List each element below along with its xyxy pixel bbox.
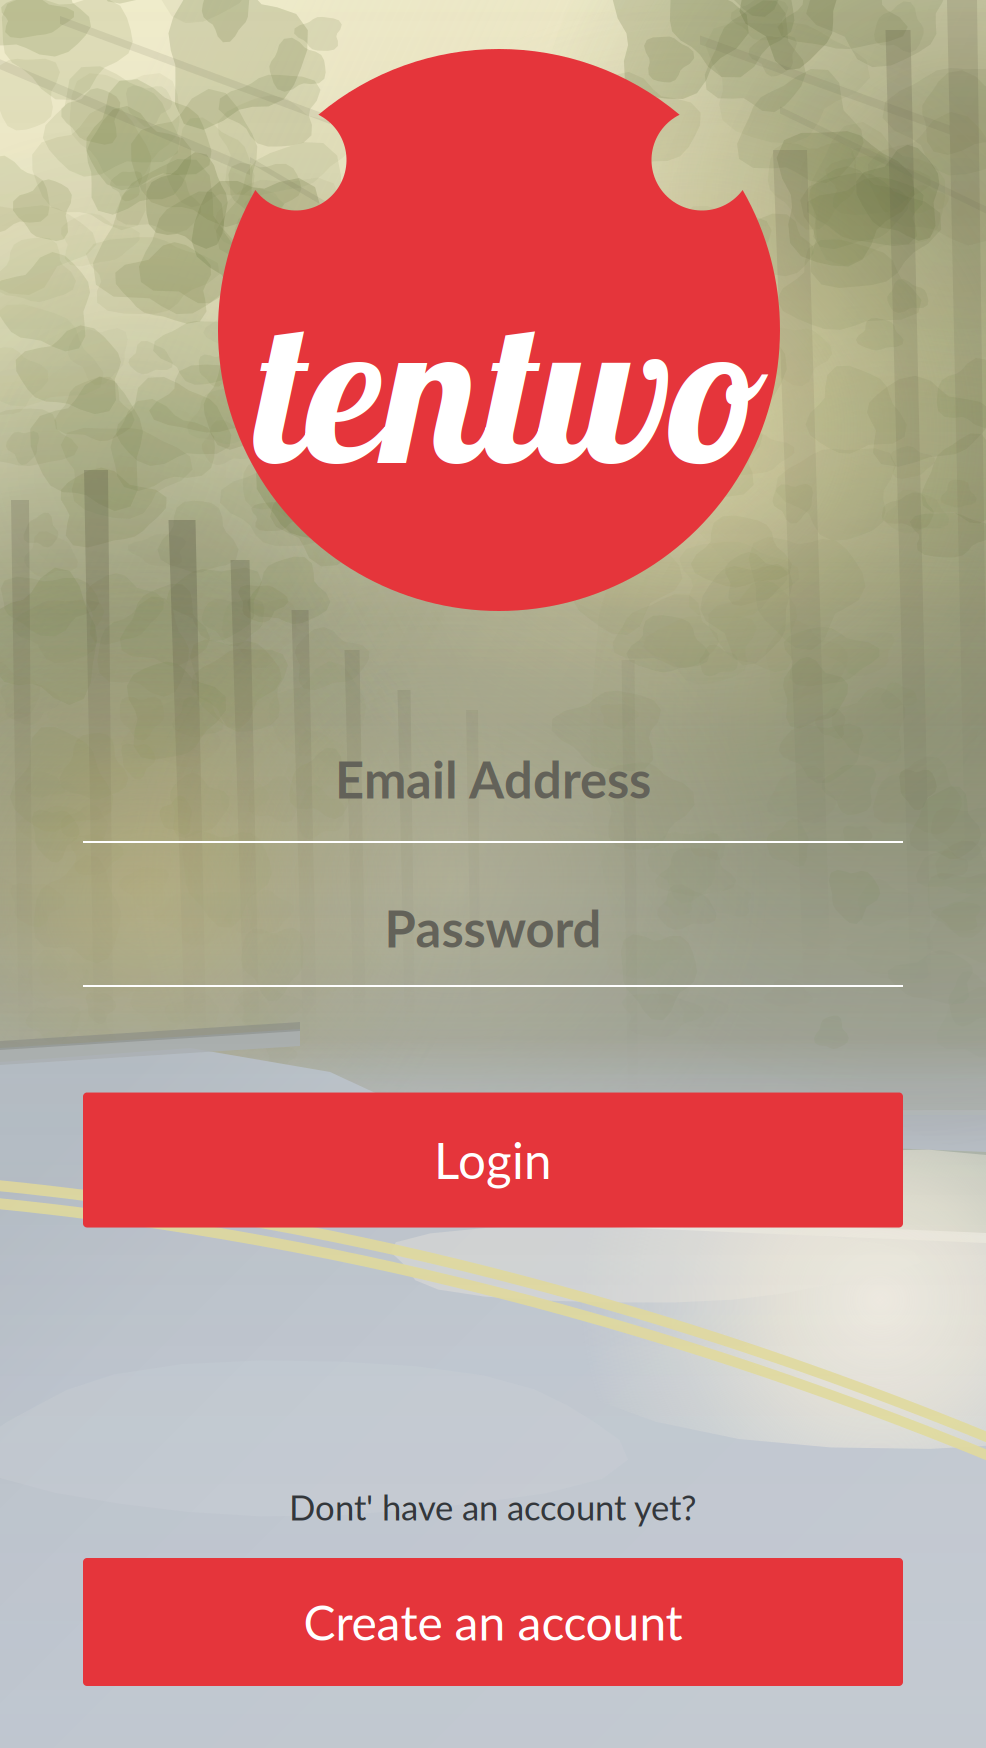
staticText: Login (434, 1130, 552, 1190)
button[interactable]: Create an account (83, 1558, 903, 1686)
staticText: tentwo (251, 263, 764, 513)
staticText: Password (384, 898, 601, 958)
staticText: Email Address (335, 749, 651, 809)
button[interactable]: Login (83, 1092, 903, 1227)
staticText: Dont' have an account yet? (289, 1486, 697, 1528)
staticText: Create an account (303, 1593, 682, 1651)
